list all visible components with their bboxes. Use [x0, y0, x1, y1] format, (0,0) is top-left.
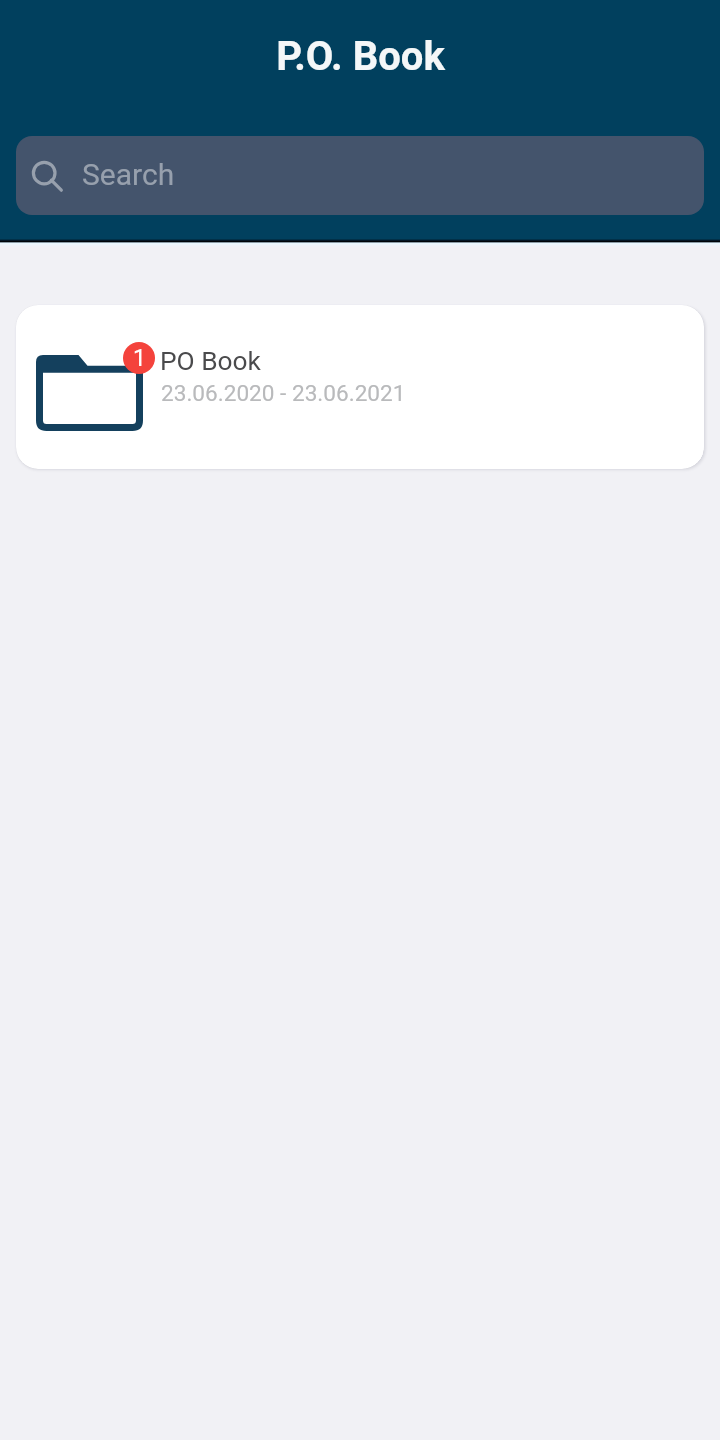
staticText: Search — [82, 157, 175, 192]
other: Search — [30, 157, 66, 193]
staticText: 1 — [133, 345, 146, 372]
button[interactable]: Search — [16, 136, 704, 215]
staticText: P.O. Book — [276, 33, 445, 80]
staticText: PO Book — [160, 346, 261, 377]
button[interactable]: 1 — [16, 305, 704, 469]
staticText: 23.06.2020 - 23.06.2021 — [161, 380, 406, 406]
